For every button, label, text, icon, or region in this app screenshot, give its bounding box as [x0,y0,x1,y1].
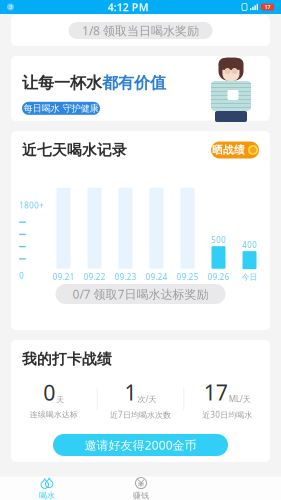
staticText: 09.21 [52,272,74,282]
staticText: 赚钱 [133,491,149,500]
staticText: 让每一杯水 [22,73,102,93]
staticText: ML/天 [229,394,251,404]
staticText: 天 [56,395,64,405]
staticText: 近30日均喝水 [202,409,252,420]
staticText: 0 [19,270,24,281]
staticText: 09.25 [176,272,198,282]
button[interactable]: 喝水 [0,477,94,500]
staticText: 09.24 [145,272,167,282]
staticText: 近七天喝水记录 [22,141,127,159]
staticText: 连续喝水达标 [30,410,78,419]
staticText: 我的打卡战绩 [22,350,112,368]
staticText: 500 [211,235,226,245]
staticText: 4:12 PM [107,0,148,14]
button[interactable]: 邀请好友得2000金币 [11,420,270,456]
staticText: 09.23 [114,272,136,282]
staticText: 每日喝水 守护健康 [23,103,98,114]
staticText: 3 [9,3,12,11]
staticText: 1800+ [19,200,44,211]
staticText: 近7日均喝水次数 [110,409,171,420]
button[interactable]: 1/8 领取当日喝水奖励 [11,15,270,46]
staticText: 17 [204,378,228,406]
staticText: 09.26 [207,272,229,282]
staticText: 0 [43,378,55,407]
staticText: 09.22 [83,272,105,282]
staticText: 喝水 [39,491,55,500]
button[interactable]: 晒战绩 [211,141,259,158]
staticText: 1/8 领取当日喝水奖励 [82,22,199,38]
button[interactable]: 0/7 领取7日喝水达标奖励 [11,281,270,304]
staticText: 1 [124,378,136,406]
staticText: 晒战绩 [212,143,245,157]
button[interactable]: 赚钱 [94,477,188,500]
staticText: 次/天 [137,394,156,404]
staticText: 今日 [241,272,257,282]
staticText: 17 [264,3,270,11]
staticText: 400 [242,239,257,250]
staticText: 0/7 领取7日喝水达标奖励 [72,286,208,302]
staticText: 都有价值 [102,73,166,93]
staticText: 邀请好友得2000金币 [84,437,196,453]
